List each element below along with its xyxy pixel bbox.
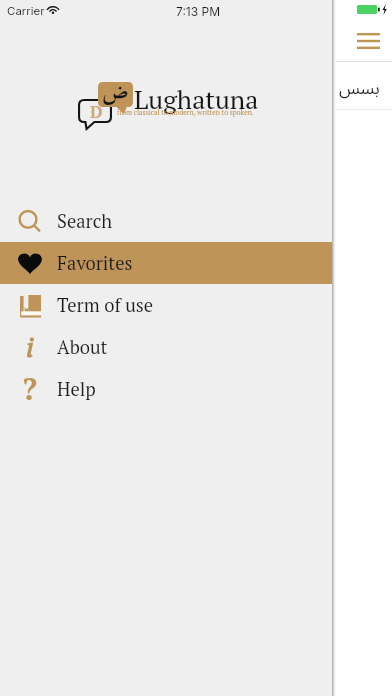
staticText: Search xyxy=(57,209,113,234)
staticText: بسس xyxy=(339,71,380,107)
staticText: Term of use xyxy=(57,293,154,318)
staticText: ض xyxy=(102,75,129,107)
button[interactable]: i xyxy=(0,326,332,368)
staticText: ? xyxy=(22,368,38,409)
staticText: i xyxy=(26,328,34,365)
button[interactable]: Search xyxy=(0,200,332,242)
staticText: D xyxy=(90,100,103,123)
button[interactable]: ? xyxy=(0,368,332,410)
staticText: About xyxy=(57,335,108,360)
staticText: Favorites xyxy=(57,251,133,276)
staticText: from classical to modern, written to spo… xyxy=(117,108,254,117)
staticText: Lughatuna xyxy=(134,82,259,116)
staticText: Help xyxy=(57,377,96,402)
button[interactable]: Term of use xyxy=(0,284,332,326)
button[interactable]: Favorites xyxy=(0,242,332,284)
staticText: Carrier xyxy=(7,4,45,18)
button[interactable]: Open menu xyxy=(352,28,385,54)
staticText: 7:13 PM xyxy=(176,4,221,19)
